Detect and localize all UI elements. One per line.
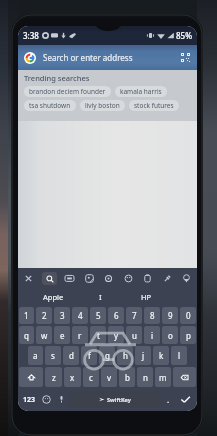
staticText: o <box>168 330 173 341</box>
button[interactable]: x <box>64 367 81 387</box>
staticText: l <box>178 350 181 361</box>
button[interactable]: Punctuation <box>161 389 175 410</box>
button[interactable]: 1 <box>19 307 34 324</box>
staticText: 123 <box>23 395 36 405</box>
button[interactable]: s <box>45 346 61 365</box>
staticText: tsa shutdown <box>29 101 71 110</box>
button[interactable]: Backspace <box>173 367 196 387</box>
staticText: x <box>70 372 75 383</box>
button[interactable]: I <box>77 288 123 306</box>
button[interactable]: 7 <box>126 307 142 324</box>
staticText: 4 <box>78 310 83 321</box>
button[interactable]: r <box>72 326 88 344</box>
staticText: u <box>132 330 137 341</box>
button[interactable]: Location <box>180 272 193 285</box>
button[interactable]: liviy boston <box>80 100 125 111</box>
button[interactable]: 8 <box>144 307 160 324</box>
button[interactable]: Voice input <box>54 389 68 410</box>
staticText: c <box>89 372 93 383</box>
staticText: t <box>97 330 100 341</box>
button[interactable]: 3 <box>54 307 70 324</box>
button[interactable]: HP <box>123 288 169 306</box>
button[interactable]: l <box>171 346 187 365</box>
button[interactable]: c <box>83 367 99 387</box>
staticText: Trending searches <box>24 73 90 83</box>
button[interactable]: Scan QR code <box>180 52 191 63</box>
staticText: 1 <box>24 310 29 321</box>
button[interactable]: Stickers <box>83 272 96 285</box>
button[interactable]: 2 <box>36 307 52 324</box>
button[interactable]: Close <box>22 272 35 285</box>
button[interactable]: h <box>117 346 133 365</box>
staticText: 9 <box>168 310 173 321</box>
button[interactable]: d <box>63 346 79 365</box>
button[interactable]: m <box>155 367 171 387</box>
button[interactable]: 123 <box>20 389 38 410</box>
button[interactable]: Space <box>69 391 160 408</box>
staticText: i <box>151 330 154 341</box>
staticText: b <box>125 372 130 383</box>
button[interactable]: n <box>137 367 153 387</box>
button[interactable]: 0 <box>180 307 196 324</box>
button[interactable]: g <box>99 346 115 365</box>
button[interactable]: 9 <box>162 307 178 324</box>
button[interactable]: i <box>144 326 160 344</box>
button[interactable]: y <box>108 326 124 344</box>
staticText: q <box>24 330 29 341</box>
button[interactable]: 4 <box>72 307 88 324</box>
staticText: s <box>51 350 55 361</box>
button[interactable]: p <box>180 326 196 344</box>
staticText: 6 <box>114 310 119 321</box>
button[interactable]: 5 <box>90 307 106 324</box>
staticText: v <box>107 372 112 383</box>
button[interactable]: o <box>162 326 178 344</box>
button[interactable]: b <box>119 367 135 387</box>
button[interactable]: GIF <box>63 272 76 285</box>
button[interactable]: tsa shutdown <box>24 100 76 111</box>
button[interactable]: w <box>36 326 52 344</box>
staticText: liviy boston <box>85 101 120 110</box>
staticText: z <box>52 372 56 383</box>
button[interactable]: Themes <box>122 272 135 285</box>
staticText: e <box>60 330 65 341</box>
button[interactable]: a <box>28 346 43 365</box>
button[interactable]: z <box>45 367 62 387</box>
staticText: Apple <box>43 292 64 302</box>
button[interactable]: v <box>101 367 117 387</box>
button[interactable]: f <box>81 346 97 365</box>
staticText: n <box>143 372 148 383</box>
button[interactable]: Search <box>42 272 57 285</box>
staticText: 7 <box>132 310 137 321</box>
button[interactable]: Clipboard <box>141 272 154 285</box>
staticText: 0 <box>186 310 191 321</box>
button[interactable]: u <box>126 326 142 344</box>
button[interactable]: Apple <box>30 288 77 306</box>
staticText: a <box>33 350 38 361</box>
button[interactable]: Emoji <box>38 389 54 410</box>
button[interactable]: t <box>90 326 106 344</box>
button[interactable]: Enter <box>175 389 195 410</box>
button[interactable]: q <box>19 326 34 344</box>
staticText: HP <box>141 292 152 302</box>
staticText: 5 <box>96 310 101 321</box>
staticText: Search or enter address <box>43 52 133 63</box>
staticText: kamala harris <box>120 87 162 96</box>
button[interactable]: stock futures <box>129 100 179 111</box>
button[interactable]: Pin <box>161 272 174 285</box>
button[interactable]: j <box>135 346 151 365</box>
staticText: g <box>105 350 110 361</box>
button[interactable]: k <box>153 346 169 365</box>
staticText: 85% <box>176 30 192 41</box>
button[interactable]: 6 <box>108 307 124 324</box>
staticText: k <box>159 350 164 361</box>
button[interactable]: Settings <box>102 272 115 285</box>
staticText: y <box>114 330 119 341</box>
button[interactable]: Search or enter address <box>18 45 197 70</box>
staticText: h <box>123 350 128 361</box>
staticText: 3 <box>60 310 65 321</box>
button[interactable]: kamala harris <box>115 86 167 97</box>
button[interactable]: Shift <box>19 367 43 387</box>
button[interactable]: e <box>54 326 70 344</box>
staticText: SwiftKey <box>107 396 131 403</box>
button[interactable]: brandon deciem founder <box>24 86 111 97</box>
